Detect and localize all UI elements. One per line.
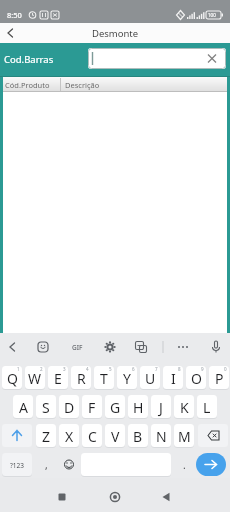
- staticText: F: [88, 398, 96, 417]
- button[interactable]: [54, 489, 70, 505]
- button[interactable]: [198, 424, 228, 447]
- button[interactable]: [4, 339, 20, 355]
- button[interactable]: T: [94, 366, 114, 390]
- staticText: H: [133, 398, 144, 417]
- button[interactable]: [2, 25, 18, 41]
- button[interactable]: GIF: [68, 340, 86, 354]
- staticText: U: [145, 369, 156, 388]
- staticText: 5: [109, 366, 112, 372]
- staticText: 8:50: [7, 10, 22, 20]
- button[interactable]: [107, 489, 123, 505]
- button[interactable]: G: [105, 395, 125, 419]
- button[interactable]: Y: [117, 366, 137, 390]
- staticText: GIF: [72, 343, 83, 352]
- button[interactable]: [209, 339, 223, 355]
- staticText: 7: [155, 366, 158, 372]
- staticText: V: [111, 427, 120, 446]
- button[interactable]: H: [128, 395, 148, 419]
- staticText: W: [28, 369, 42, 388]
- staticText: 2: [40, 366, 43, 372]
- staticText: P: [215, 369, 224, 388]
- staticText: 100: [208, 12, 216, 18]
- button[interactable]: [196, 453, 226, 476]
- staticText: Z: [42, 427, 51, 446]
- button[interactable]: [2, 424, 32, 447]
- staticText: S: [42, 398, 50, 417]
- button[interactable]: ,: [36, 453, 56, 477]
- button[interactable]: E: [48, 366, 68, 390]
- staticText: I: [171, 369, 176, 388]
- staticText: D: [64, 398, 75, 417]
- button[interactable]: [81, 453, 171, 477]
- button[interactable]: D: [59, 395, 79, 419]
- staticText: Cód.Produto: [5, 80, 50, 90]
- staticText: Q: [7, 369, 18, 388]
- staticText: 9: [201, 366, 204, 372]
- button[interactable]: O: [186, 366, 206, 390]
- staticText: O: [191, 369, 202, 388]
- staticText: N: [156, 427, 167, 446]
- button[interactable]: N: [151, 424, 171, 448]
- button[interactable]: .: [174, 453, 194, 477]
- button[interactable]: R: [71, 366, 91, 390]
- staticText: K: [180, 398, 189, 417]
- staticText: ,: [45, 458, 48, 472]
- button[interactable]: I: [163, 366, 183, 390]
- staticText: X: [65, 427, 74, 446]
- staticText: Y: [123, 369, 131, 388]
- staticText: Cod.Barras: [4, 53, 54, 66]
- button[interactable]: L: [197, 395, 217, 419]
- button[interactable]: ?123: [2, 453, 32, 477]
- button[interactable]: U: [140, 366, 160, 390]
- button[interactable]: V: [105, 424, 125, 448]
- staticText: R: [77, 369, 86, 388]
- button[interactable]: B: [128, 424, 148, 448]
- button[interactable]: Q: [2, 366, 22, 390]
- staticText: .: [183, 458, 186, 472]
- button[interactable]: Z: [36, 424, 56, 448]
- staticText: E: [54, 369, 62, 388]
- staticText: M: [178, 427, 191, 446]
- staticText: 4: [86, 366, 89, 372]
- button[interactable]: [88, 48, 226, 69]
- button[interactable]: [59, 453, 79, 476]
- button[interactable]: P: [209, 366, 229, 390]
- staticText: 0: [224, 366, 227, 372]
- staticText: 6: [132, 366, 135, 372]
- button[interactable]: S: [36, 395, 56, 419]
- button[interactable]: [134, 340, 148, 354]
- staticText: Descrição: [65, 80, 100, 90]
- button[interactable]: W: [25, 366, 45, 390]
- staticText: Desmonte: [92, 27, 139, 40]
- button[interactable]: [175, 340, 191, 354]
- button[interactable]: M: [174, 424, 194, 448]
- staticText: B: [133, 427, 143, 446]
- button[interactable]: J: [151, 395, 171, 419]
- button[interactable]: F: [82, 395, 102, 419]
- button[interactable]: [103, 340, 117, 354]
- staticText: 8: [178, 366, 181, 372]
- staticText: J: [159, 398, 163, 417]
- staticText: C: [88, 427, 97, 446]
- button[interactable]: C: [82, 424, 102, 448]
- staticText: G: [110, 398, 121, 417]
- staticText: 1: [17, 366, 20, 372]
- staticText: ?123: [10, 461, 24, 470]
- button[interactable]: K: [174, 395, 194, 419]
- staticText: L: [203, 398, 211, 417]
- button[interactable]: [36, 340, 50, 354]
- button[interactable]: X: [59, 424, 79, 448]
- button[interactable]: A: [13, 395, 33, 419]
- staticText: T: [100, 369, 108, 388]
- staticText: A: [19, 398, 28, 417]
- button[interactable]: [158, 489, 174, 505]
- staticText: 3: [63, 366, 66, 372]
